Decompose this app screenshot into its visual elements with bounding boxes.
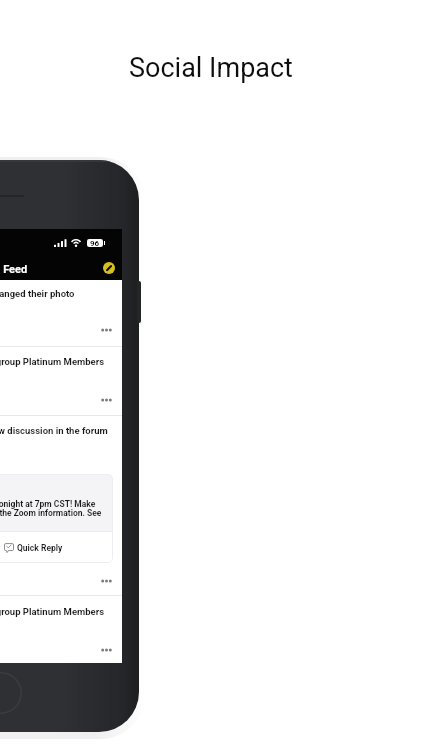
staticText: Social Impact xyxy=(129,52,293,84)
button[interactable]: Quick Reply xyxy=(0,532,113,563)
button[interactable]: Compose new post xyxy=(103,262,115,274)
staticText: Shelby Simmons changed their photo xyxy=(0,288,75,299)
staticText: Floyd Miles started a new discussion in … xyxy=(0,425,122,436)
other: More options xyxy=(101,577,112,585)
staticText: Annette Reyes joined the group Platinum … xyxy=(0,606,105,617)
button[interactable]: Shelby Simmons changed their photo xyxy=(0,281,122,346)
staticText: Quick Reply xyxy=(17,543,63,553)
staticText: Annette Reyes joined the group Platinum … xyxy=(0,356,105,367)
staticText: Our meeting is tonight at 7pm CST! Make xyxy=(0,499,113,509)
button[interactable]: Annette Reyes joined the group Platinum … xyxy=(0,596,122,663)
other: More options xyxy=(101,646,112,654)
staticText: sure to check the Zoom information. See xyxy=(0,508,113,518)
staticText: 96 xyxy=(90,239,100,247)
button[interactable]: Floyd Miles started a new discussion in … xyxy=(0,416,122,595)
other: More options xyxy=(101,396,112,404)
staticText: News Feed xyxy=(0,263,28,276)
other: More options xyxy=(101,326,112,334)
button[interactable]: Annette Reyes joined the group Platinum … xyxy=(0,347,122,415)
